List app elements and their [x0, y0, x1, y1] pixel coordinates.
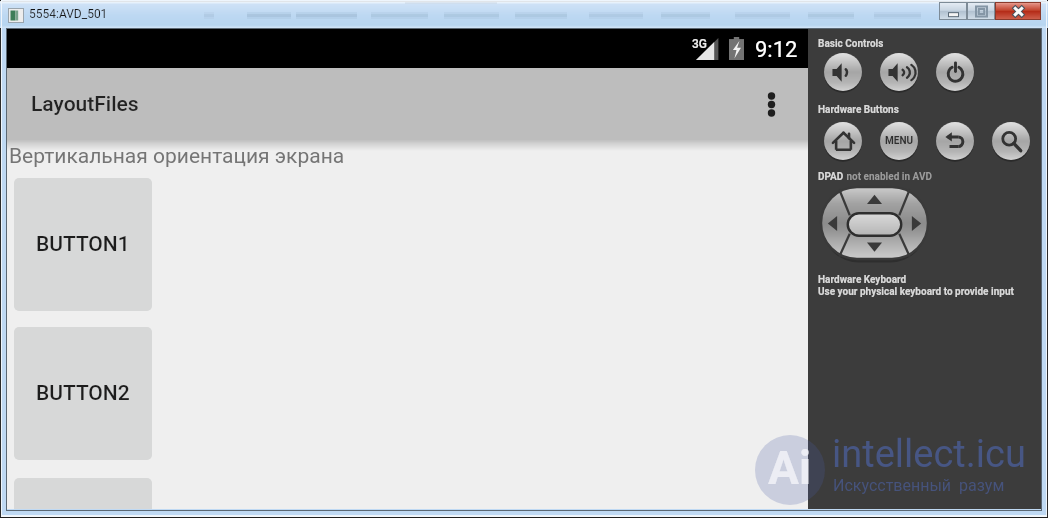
button[interactable]: Menu [880, 122, 918, 160]
staticText: Hardware Buttons [818, 104, 899, 116]
button[interactable]: More options [751, 68, 808, 140]
staticText: Вертикальная ориентация экрана [9, 144, 345, 169]
button[interactable]: Close [995, 2, 1041, 20]
staticText: MENU [885, 135, 914, 147]
button[interactable]: Home [824, 122, 862, 160]
staticText: not enabled in AVD [844, 171, 932, 183]
button[interactable]: Maximize [967, 2, 995, 20]
staticText: intellect.icu [832, 432, 1026, 477]
staticText: Use your physical keyboard to provide in… [818, 286, 1048, 298]
staticText: Hardware Keyboard [818, 274, 907, 286]
button[interactable]: Back [936, 122, 974, 160]
staticText: DPAD [818, 171, 844, 183]
staticText: Basic Controls [818, 38, 884, 50]
button[interactable]: Volume down [824, 53, 862, 91]
button[interactable]: Minimize [939, 2, 967, 20]
button[interactable]: D-pad [821, 187, 928, 262]
staticText: 9:12 [755, 37, 798, 63]
staticText: Ai [768, 441, 812, 495]
button[interactable]: BUTTON1 [14, 178, 152, 311]
button[interactable]: Power [936, 53, 974, 91]
button[interactable]: Search [992, 122, 1030, 160]
button[interactable]: Volume up [880, 53, 918, 91]
staticText: BUTTON1 [36, 232, 130, 257]
staticText: LayoutFiles [31, 92, 139, 117]
button[interactable]: BUTTON2 [14, 327, 152, 460]
staticText: BUTTON2 [36, 381, 130, 406]
staticText: 5554:AVD_501 [29, 7, 108, 21]
staticText: Искусственный разум [833, 476, 1005, 495]
staticText: 3G [692, 37, 707, 51]
